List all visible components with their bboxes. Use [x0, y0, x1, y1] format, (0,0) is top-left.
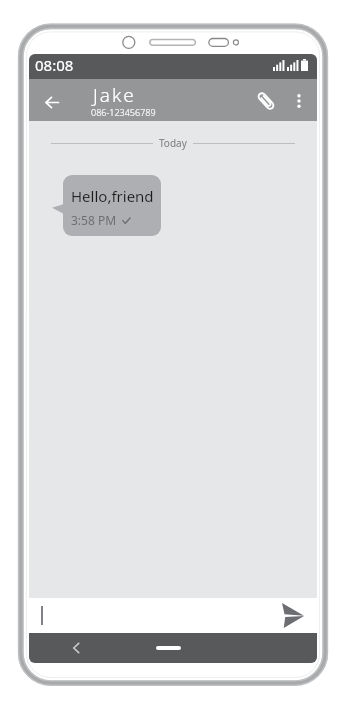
button[interactable]: Send [278, 600, 308, 630]
button[interactable]: Back [37, 87, 67, 117]
button[interactable]: Back [63, 635, 89, 661]
staticText: 086-123456789 [91, 106, 156, 118]
staticText: Today [159, 136, 187, 150]
staticText: Hello,friend [71, 186, 154, 206]
staticText: Jake [93, 82, 136, 108]
staticText: 3:58 PM [71, 212, 117, 228]
button[interactable]: Home [148, 637, 188, 659]
button[interactable]: Hello,friend [63, 175, 161, 236]
button[interactable]: Attach file [250, 85, 281, 116]
staticText: 08:08 [35, 55, 74, 75]
button[interactable]: More options [285, 87, 312, 114]
